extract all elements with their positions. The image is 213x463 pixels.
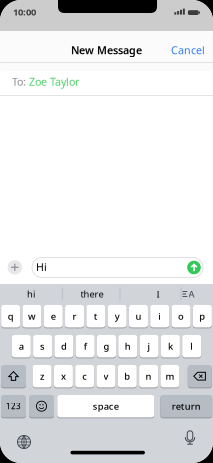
button[interactable]: o (172, 304, 191, 328)
staticText: p (199, 310, 205, 322)
staticText: t (94, 310, 98, 322)
staticText: l (190, 340, 193, 352)
staticText: a (19, 340, 24, 352)
button[interactable] (186, 260, 201, 275)
button[interactable]: t (86, 304, 105, 328)
staticText: s (40, 340, 45, 352)
button[interactable] (16, 434, 32, 450)
staticText: y (115, 310, 120, 322)
button[interactable]: To: (0, 65, 213, 97)
staticText: z (40, 370, 44, 382)
staticText: q (8, 310, 14, 322)
button[interactable]: h (118, 334, 137, 358)
button[interactable]: space (57, 394, 154, 418)
button[interactable]: k (161, 334, 180, 358)
staticText: I (156, 288, 159, 300)
button[interactable] (182, 431, 198, 447)
staticText: Hi (36, 260, 47, 274)
button[interactable]: u (129, 304, 148, 328)
staticText: 10:00 (13, 6, 36, 18)
button[interactable]: n (139, 364, 158, 388)
staticText: k (168, 340, 173, 352)
button[interactable]: x (54, 364, 73, 388)
button[interactable] (29, 394, 54, 418)
staticText: g (103, 340, 109, 352)
button[interactable]: there (64, 285, 119, 302)
button[interactable]: j (140, 334, 159, 358)
staticText: u (135, 310, 141, 322)
button[interactable]: 123 (1, 394, 26, 418)
staticText: w (28, 310, 36, 322)
staticText: e (51, 310, 56, 322)
button[interactable]: i (150, 304, 169, 328)
button[interactable]: c (75, 364, 94, 388)
staticText: f (84, 340, 87, 352)
staticText: i (158, 310, 161, 322)
staticText: New Message (71, 43, 142, 57)
button[interactable]: I (130, 285, 185, 302)
button[interactable]: m (160, 364, 179, 388)
button[interactable]: g (97, 334, 116, 358)
staticText: v (103, 370, 108, 382)
button[interactable]: y (108, 304, 127, 328)
button[interactable]: return (160, 394, 212, 418)
staticText: return (172, 400, 201, 412)
staticText: h (125, 340, 131, 352)
button[interactable]: e (44, 304, 63, 328)
staticText: m (165, 370, 174, 382)
button[interactable] (7, 259, 23, 275)
staticText: hi (27, 288, 35, 300)
button[interactable]: b (118, 364, 137, 388)
button[interactable]: q (1, 304, 20, 328)
staticText: r (73, 310, 77, 322)
button[interactable]: a (12, 334, 31, 358)
button[interactable]: v (96, 364, 115, 388)
button[interactable]: s (33, 334, 52, 358)
staticText: n (146, 370, 152, 382)
button[interactable]: hi (1, 285, 61, 302)
button[interactable]: f (76, 334, 95, 358)
button[interactable] (1, 364, 26, 388)
staticText: there (80, 288, 103, 300)
button[interactable]: A (180, 285, 202, 303)
button[interactable]: p (193, 304, 212, 328)
button[interactable] (188, 364, 212, 388)
staticText: 123 (6, 401, 21, 411)
staticText: j (148, 340, 151, 352)
staticText: d (61, 340, 67, 352)
button[interactable]: r (65, 304, 84, 328)
staticText: x (61, 370, 66, 382)
staticText: o (178, 310, 184, 322)
button[interactable]: w (22, 304, 41, 328)
staticText: A (188, 288, 194, 300)
staticText: To: (12, 74, 26, 89)
staticText: Cancel (171, 43, 205, 57)
button[interactable]: d (54, 334, 73, 358)
staticText: b (124, 370, 130, 382)
staticText: c (82, 370, 87, 382)
button[interactable]: Hi (32, 257, 203, 277)
button[interactable]: z (33, 364, 52, 388)
button[interactable]: Cancel (171, 42, 205, 58)
staticText: Zoe Taylor (29, 74, 79, 89)
button[interactable]: l (182, 334, 201, 358)
staticText: space (93, 400, 119, 412)
